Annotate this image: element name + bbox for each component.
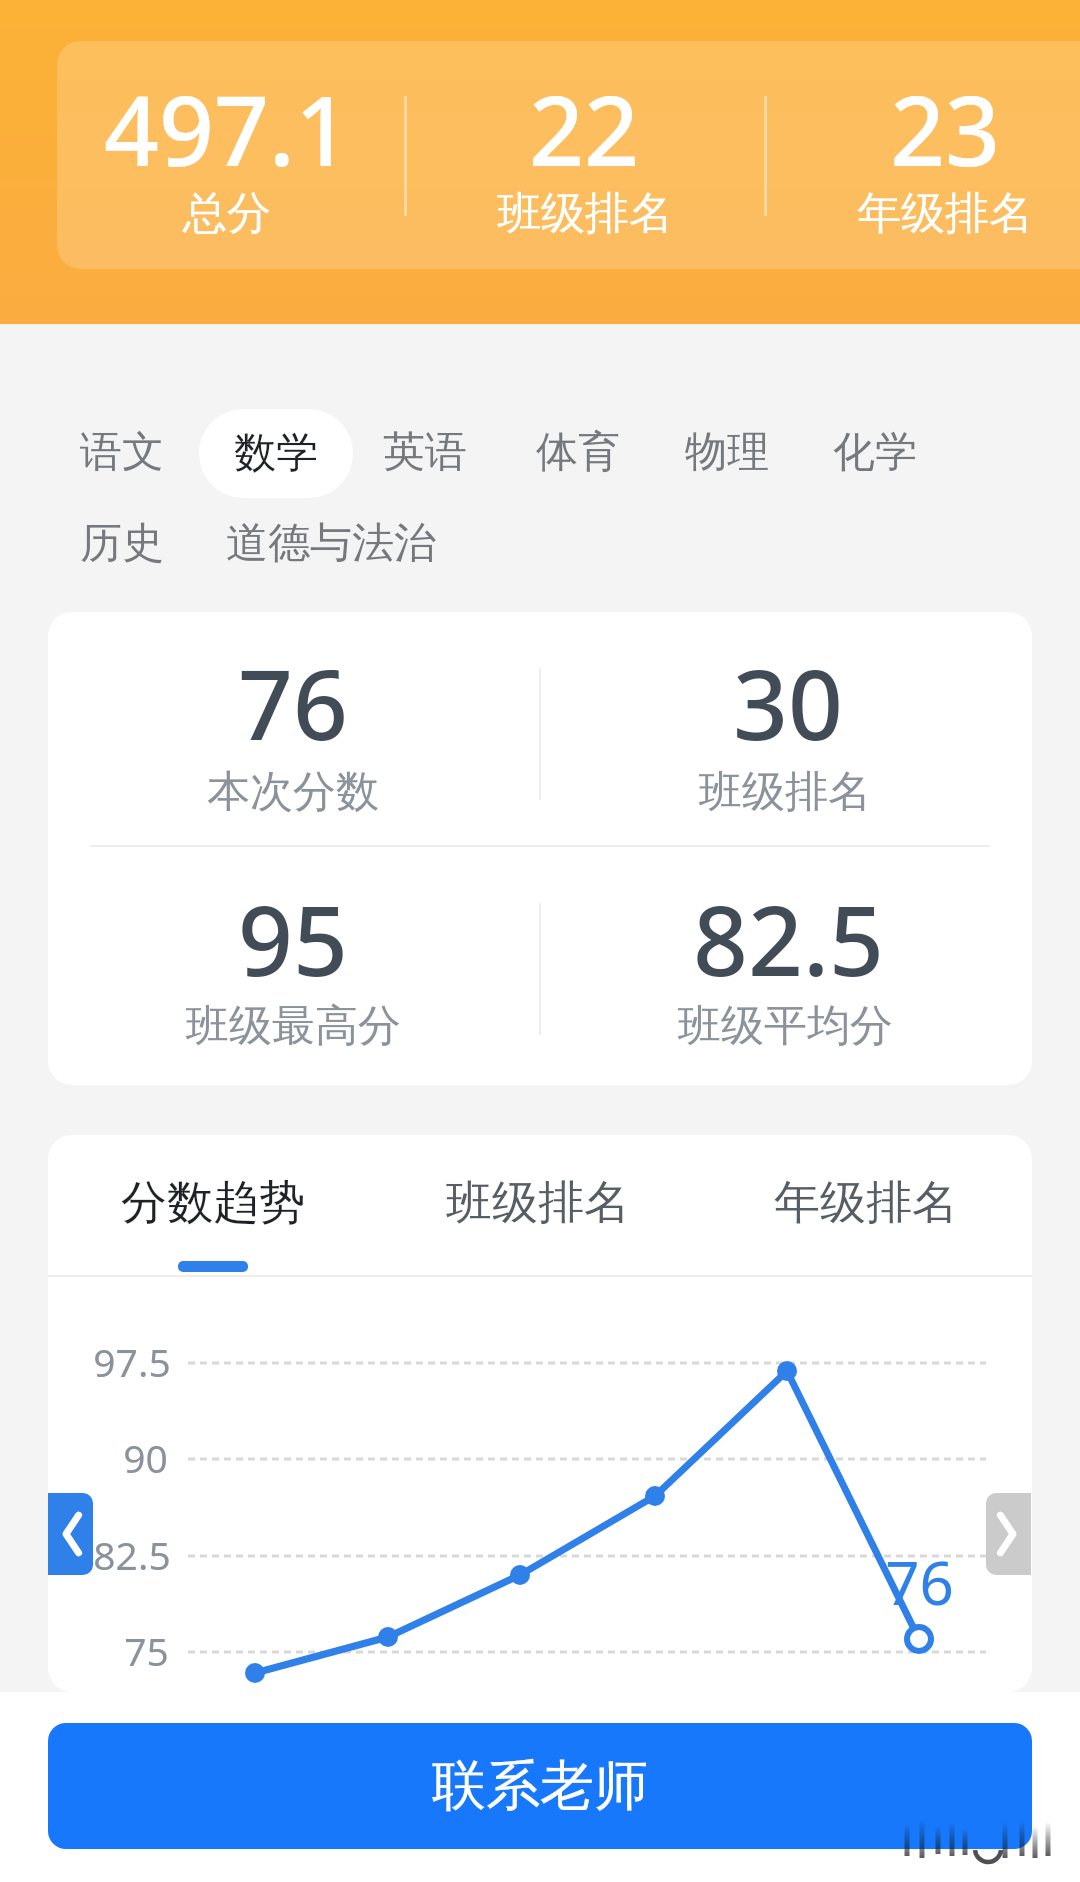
staticText: 82.5 <box>93 1528 171 1581</box>
staticText: 班级排名 <box>699 765 871 819</box>
staticText: 30 <box>733 637 843 747</box>
staticText: 班级排名 <box>446 1174 630 1232</box>
staticText: 76 <box>885 1541 954 1621</box>
staticText: 23 <box>890 63 1000 173</box>
staticText: 分数趋势 <box>121 1174 305 1232</box>
button[interactable]: 联系老师 <box>48 1723 1032 1849</box>
button[interactable] <box>986 1493 1031 1575</box>
staticText: 物理 <box>685 426 769 479</box>
staticText: 体育 <box>536 426 620 479</box>
staticText: 95 <box>238 873 348 983</box>
staticText: 道德与法治 <box>226 517 436 570</box>
button[interactable] <box>57 41 1080 269</box>
staticText: 97.5 <box>93 1335 171 1388</box>
staticText: 班级平均分 <box>678 999 893 1053</box>
staticText: 历史 <box>80 517 164 570</box>
staticText: 82.5 <box>693 873 884 983</box>
staticText: 76 <box>238 637 348 747</box>
staticText: 90 <box>123 1431 168 1484</box>
staticText: 班级最高分 <box>186 999 401 1053</box>
staticText: 英语 <box>383 426 467 479</box>
staticText: 497.1 <box>104 63 350 173</box>
staticText: 班级排名 <box>497 186 673 241</box>
staticText: 化学 <box>833 426 917 479</box>
staticText: 数学 <box>234 427 318 480</box>
staticText: 本次分数 <box>207 765 379 819</box>
staticText: 语文 <box>80 426 164 479</box>
button[interactable] <box>48 1493 93 1575</box>
staticText: 年级排名 <box>774 1174 958 1232</box>
staticText: 总分 <box>183 186 271 241</box>
staticText: 联系老师 <box>432 1752 648 1820</box>
staticText: 年级排名 <box>857 186 1033 241</box>
staticText: 75 <box>124 1624 169 1677</box>
staticText: 22 <box>529 63 639 173</box>
button[interactable] <box>199 409 353 498</box>
